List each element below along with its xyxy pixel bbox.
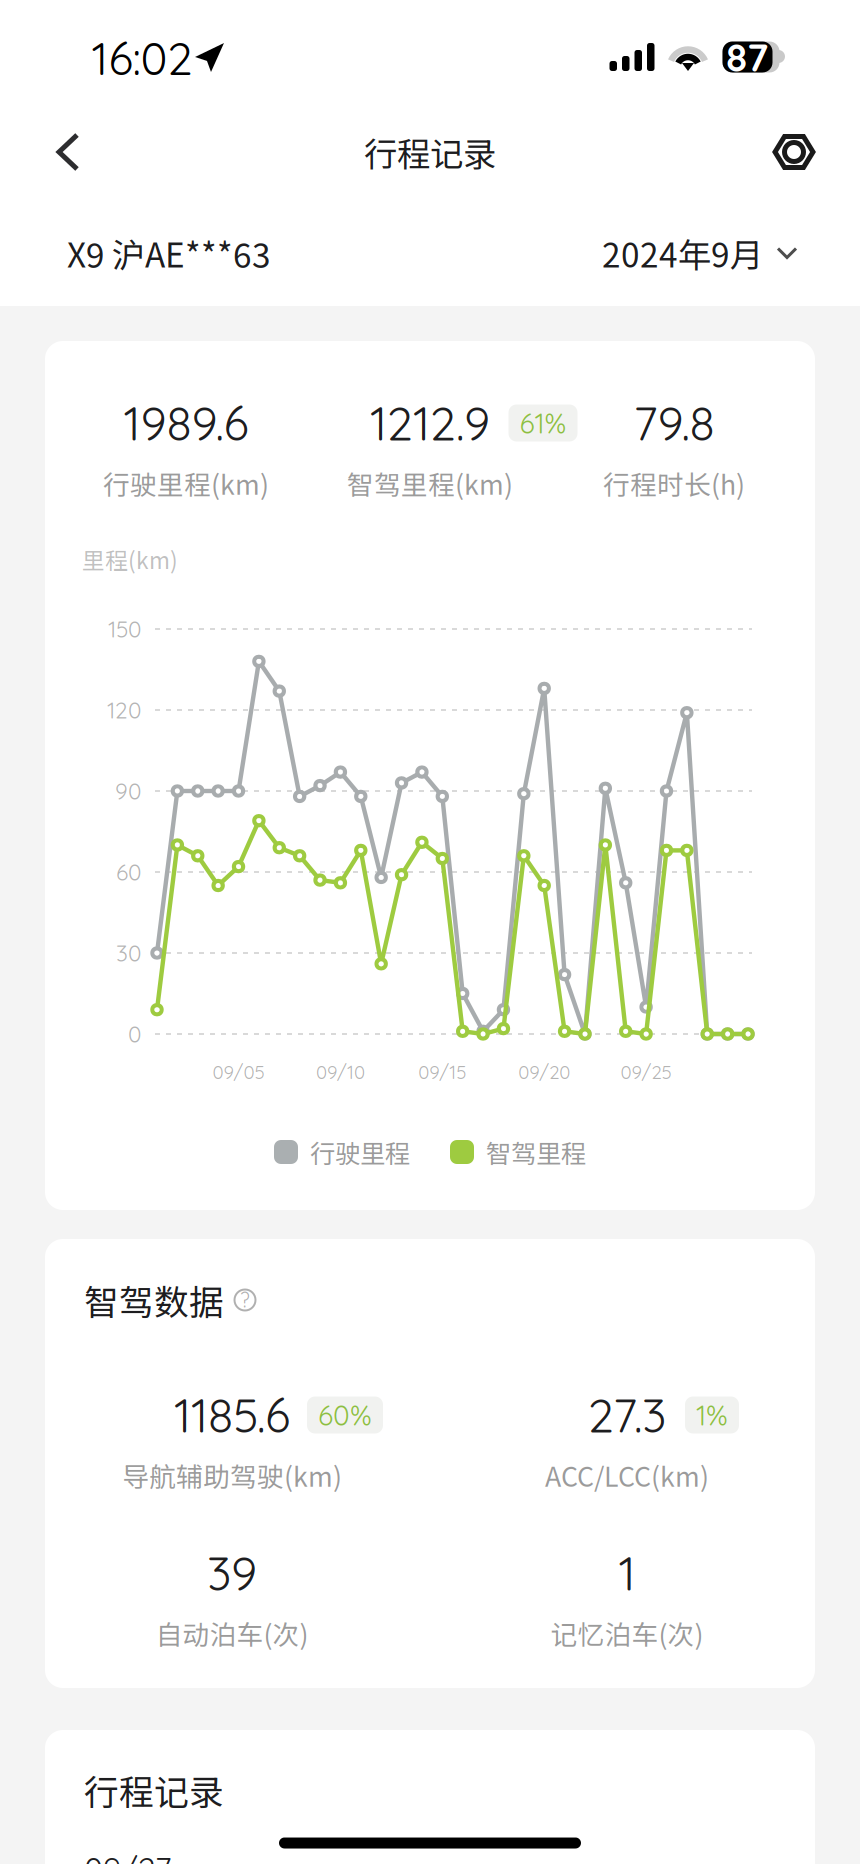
button[interactable]: 2024年9月 [602, 229, 798, 277]
staticText: 150 [108, 615, 141, 643]
staticText: 里程(km) [82, 543, 178, 575]
staticText: 79.8 [633, 394, 714, 452]
staticText: 自动泊车(次) [155, 1614, 308, 1652]
button[interactable]: Back [30, 112, 106, 192]
staticText: ACC/LCC(km) [545, 1456, 709, 1494]
staticText: 60% [318, 1397, 372, 1432]
staticText: 87 [726, 33, 768, 81]
staticText: 16:02 [91, 30, 192, 86]
staticText: 1212.9 [370, 394, 490, 452]
staticText: 09/10 [316, 1060, 365, 1084]
staticText: 导航辅助驾驶(km) [122, 1456, 342, 1494]
staticText: 120 [107, 696, 141, 724]
staticText: 60 [116, 858, 141, 886]
staticText: 30 [116, 939, 141, 967]
staticText: 1 [618, 1544, 635, 1602]
staticText: 0 [128, 1020, 141, 1048]
staticText: 39 [207, 1544, 257, 1602]
staticText: 行驶里程 [310, 1134, 410, 1170]
staticText: 智驾里程 [486, 1134, 586, 1170]
staticText: 智驾数据 [84, 1275, 224, 1325]
staticText: 61% [519, 405, 566, 440]
staticText: X9 沪AE***63 [67, 229, 271, 277]
staticText: 记忆泊车(次) [550, 1614, 703, 1652]
staticText: 09/05 [212, 1060, 264, 1084]
staticText: 智驾里程(km) [347, 464, 513, 502]
staticText: 09/20 [518, 1060, 570, 1084]
staticText: 09/27 [84, 1849, 171, 1864]
button[interactable]: Help [233, 1288, 257, 1312]
staticText: 行程记录 [364, 128, 496, 176]
staticText: 1989.6 [123, 394, 248, 452]
staticText: 行程时长(h) [603, 464, 745, 502]
staticText: 2024年9月 [602, 229, 763, 277]
staticText: 09/15 [418, 1060, 466, 1084]
staticText: 1185.6 [174, 1386, 290, 1444]
staticText: 行程记录 [84, 1765, 224, 1815]
button[interactable]: Settings [756, 112, 832, 192]
staticText: 90 [115, 777, 141, 805]
staticText: 09/25 [621, 1060, 672, 1084]
staticText: 1% [696, 1397, 728, 1432]
staticText: 行驶里程(km) [103, 464, 269, 502]
staticText: ? [240, 1287, 250, 1312]
staticText: 27.3 [588, 1386, 666, 1444]
